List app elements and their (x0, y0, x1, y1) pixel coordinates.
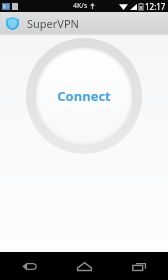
staticText: 12:17 (145, 1, 166, 12)
staticText: SuperVPN (27, 16, 79, 31)
staticText: 4K/s (73, 1, 88, 11)
staticText: Connect (57, 87, 111, 105)
button[interactable]: Back (3, 252, 55, 280)
button[interactable]: Connect (26, 38, 142, 154)
button[interactable]: Recent apps (113, 252, 165, 280)
button[interactable]: Home (58, 252, 110, 280)
